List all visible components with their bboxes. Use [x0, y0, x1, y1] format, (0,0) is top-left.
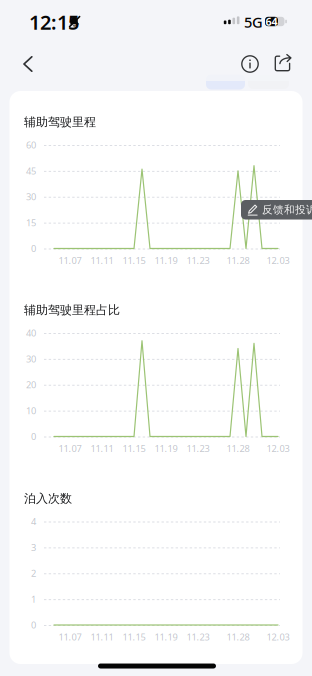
staticText: 11.28 — [226, 254, 249, 267]
staticText: 11.23 — [186, 442, 209, 455]
staticText: 反馈和投诉 — [262, 203, 312, 216]
button[interactable]: Back — [2, 42, 46, 86]
staticText: 11.11 — [90, 254, 113, 267]
staticText: 辅助驾驶里程 — [24, 115, 96, 129]
button[interactable]: Share — [261, 42, 305, 86]
staticText: 5G — [244, 12, 263, 32]
staticText: 11.11 — [90, 442, 113, 455]
staticText: 12.03 — [266, 254, 289, 267]
staticText: 11.07 — [58, 254, 81, 267]
staticText: 64 — [265, 14, 277, 29]
staticText: 11.19 — [154, 442, 177, 455]
staticText: 30 — [26, 353, 36, 365]
staticText: 12.03 — [266, 442, 289, 455]
staticText: 11.23 — [186, 631, 209, 643]
staticText: 11.15 — [122, 254, 145, 267]
staticText: 30 — [26, 191, 36, 203]
staticText: 11.19 — [154, 631, 177, 643]
staticText: 辅助驾驶里程占比 — [24, 303, 120, 317]
staticText: 15 — [26, 216, 36, 229]
staticText: 3 — [31, 541, 36, 554]
staticText: 1 — [31, 593, 36, 605]
staticText: 10 — [26, 404, 36, 417]
staticText: 11.15 — [122, 631, 145, 643]
staticText: 45 — [26, 165, 36, 177]
staticText: 11.07 — [58, 631, 81, 643]
staticText: 0 — [31, 242, 36, 255]
staticText: 20 — [26, 379, 36, 391]
button[interactable]: Info — [228, 42, 272, 86]
staticText: 0 — [31, 619, 36, 631]
staticText: 11.19 — [154, 254, 177, 267]
button[interactable]: 反馈和投诉 — [241, 200, 312, 219]
staticText: 60 — [26, 139, 36, 151]
staticText: 11.11 — [90, 631, 113, 643]
staticText: 0 — [31, 430, 36, 443]
staticText: 4 — [31, 515, 36, 528]
staticText: 40 — [26, 327, 36, 339]
staticText: 2 — [31, 567, 36, 579]
staticText: 12.03 — [266, 631, 289, 643]
staticText: 11.07 — [58, 442, 81, 455]
staticText: 泊入次数 — [24, 491, 72, 506]
staticText: 11.15 — [122, 442, 145, 455]
staticText: 11.28 — [226, 631, 249, 643]
staticText: 11.23 — [186, 254, 209, 267]
staticText: 12:15 — [29, 9, 79, 35]
staticText: 11.28 — [226, 442, 249, 455]
